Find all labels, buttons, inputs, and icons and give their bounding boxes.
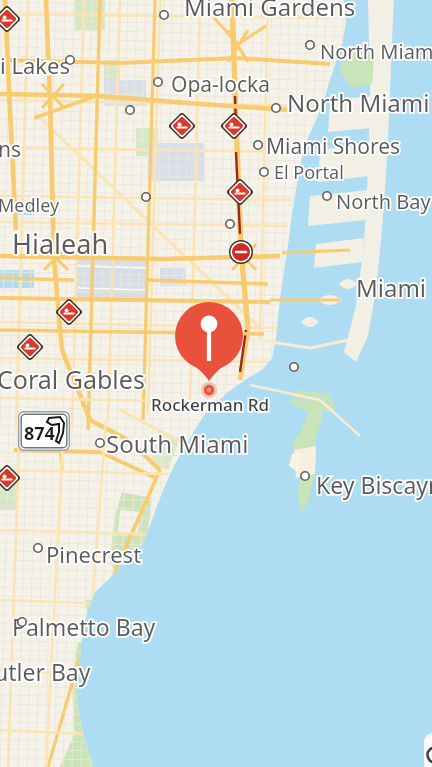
staticText: Miami [356, 271, 427, 304]
staticText: Key Biscayne [316, 469, 432, 500]
staticText: ns [0, 135, 22, 164]
staticText: Palmetto Bay [12, 611, 156, 642]
staticText: Pinecrest [46, 539, 142, 569]
staticText: South Miami [106, 427, 249, 460]
staticText: North Miami [287, 86, 430, 119]
staticText: utler Bay [0, 656, 91, 687]
button[interactable]: Recenter map [424, 733, 432, 767]
staticText: Coral Gables [0, 362, 145, 396]
staticText: Opa-locka [171, 70, 271, 99]
staticText: utler Bay [0, 656, 91, 687]
staticText: Hialeah [12, 225, 109, 262]
staticText: Palmetto Bay [12, 611, 156, 642]
staticText: Hialeah [12, 225, 109, 262]
staticText: North Bay [336, 188, 431, 215]
staticText: Rockerman Rd [151, 393, 270, 416]
staticText: Medley [0, 193, 60, 218]
staticText: Miami Shores [266, 132, 401, 161]
staticText: El Portal [274, 160, 344, 185]
staticText: Pinecrest [46, 539, 142, 569]
staticText: North Miami [320, 38, 432, 65]
staticText: Miami Shores [266, 132, 401, 161]
staticText: Key Biscayne [316, 469, 432, 500]
staticText: Miami Gardens [184, 0, 356, 23]
staticText: Opa-locka [171, 70, 271, 99]
staticText: Medley [0, 193, 60, 218]
staticText: North Miami [287, 86, 430, 119]
staticText: Coral Gables [0, 362, 145, 396]
staticText: El Portal [274, 160, 344, 185]
staticText: North Miami [320, 38, 432, 65]
staticText: Rockerman Rd [151, 393, 270, 416]
staticText: ns [0, 135, 22, 164]
staticText: 874 [24, 421, 55, 446]
staticText: North Bay [336, 188, 431, 215]
staticText: South Miami [106, 427, 249, 460]
staticText: i Lakes [0, 50, 70, 80]
staticText: Miami Gardens [184, 0, 356, 23]
staticText: Miami [356, 271, 427, 304]
staticText: i Lakes [0, 50, 70, 80]
